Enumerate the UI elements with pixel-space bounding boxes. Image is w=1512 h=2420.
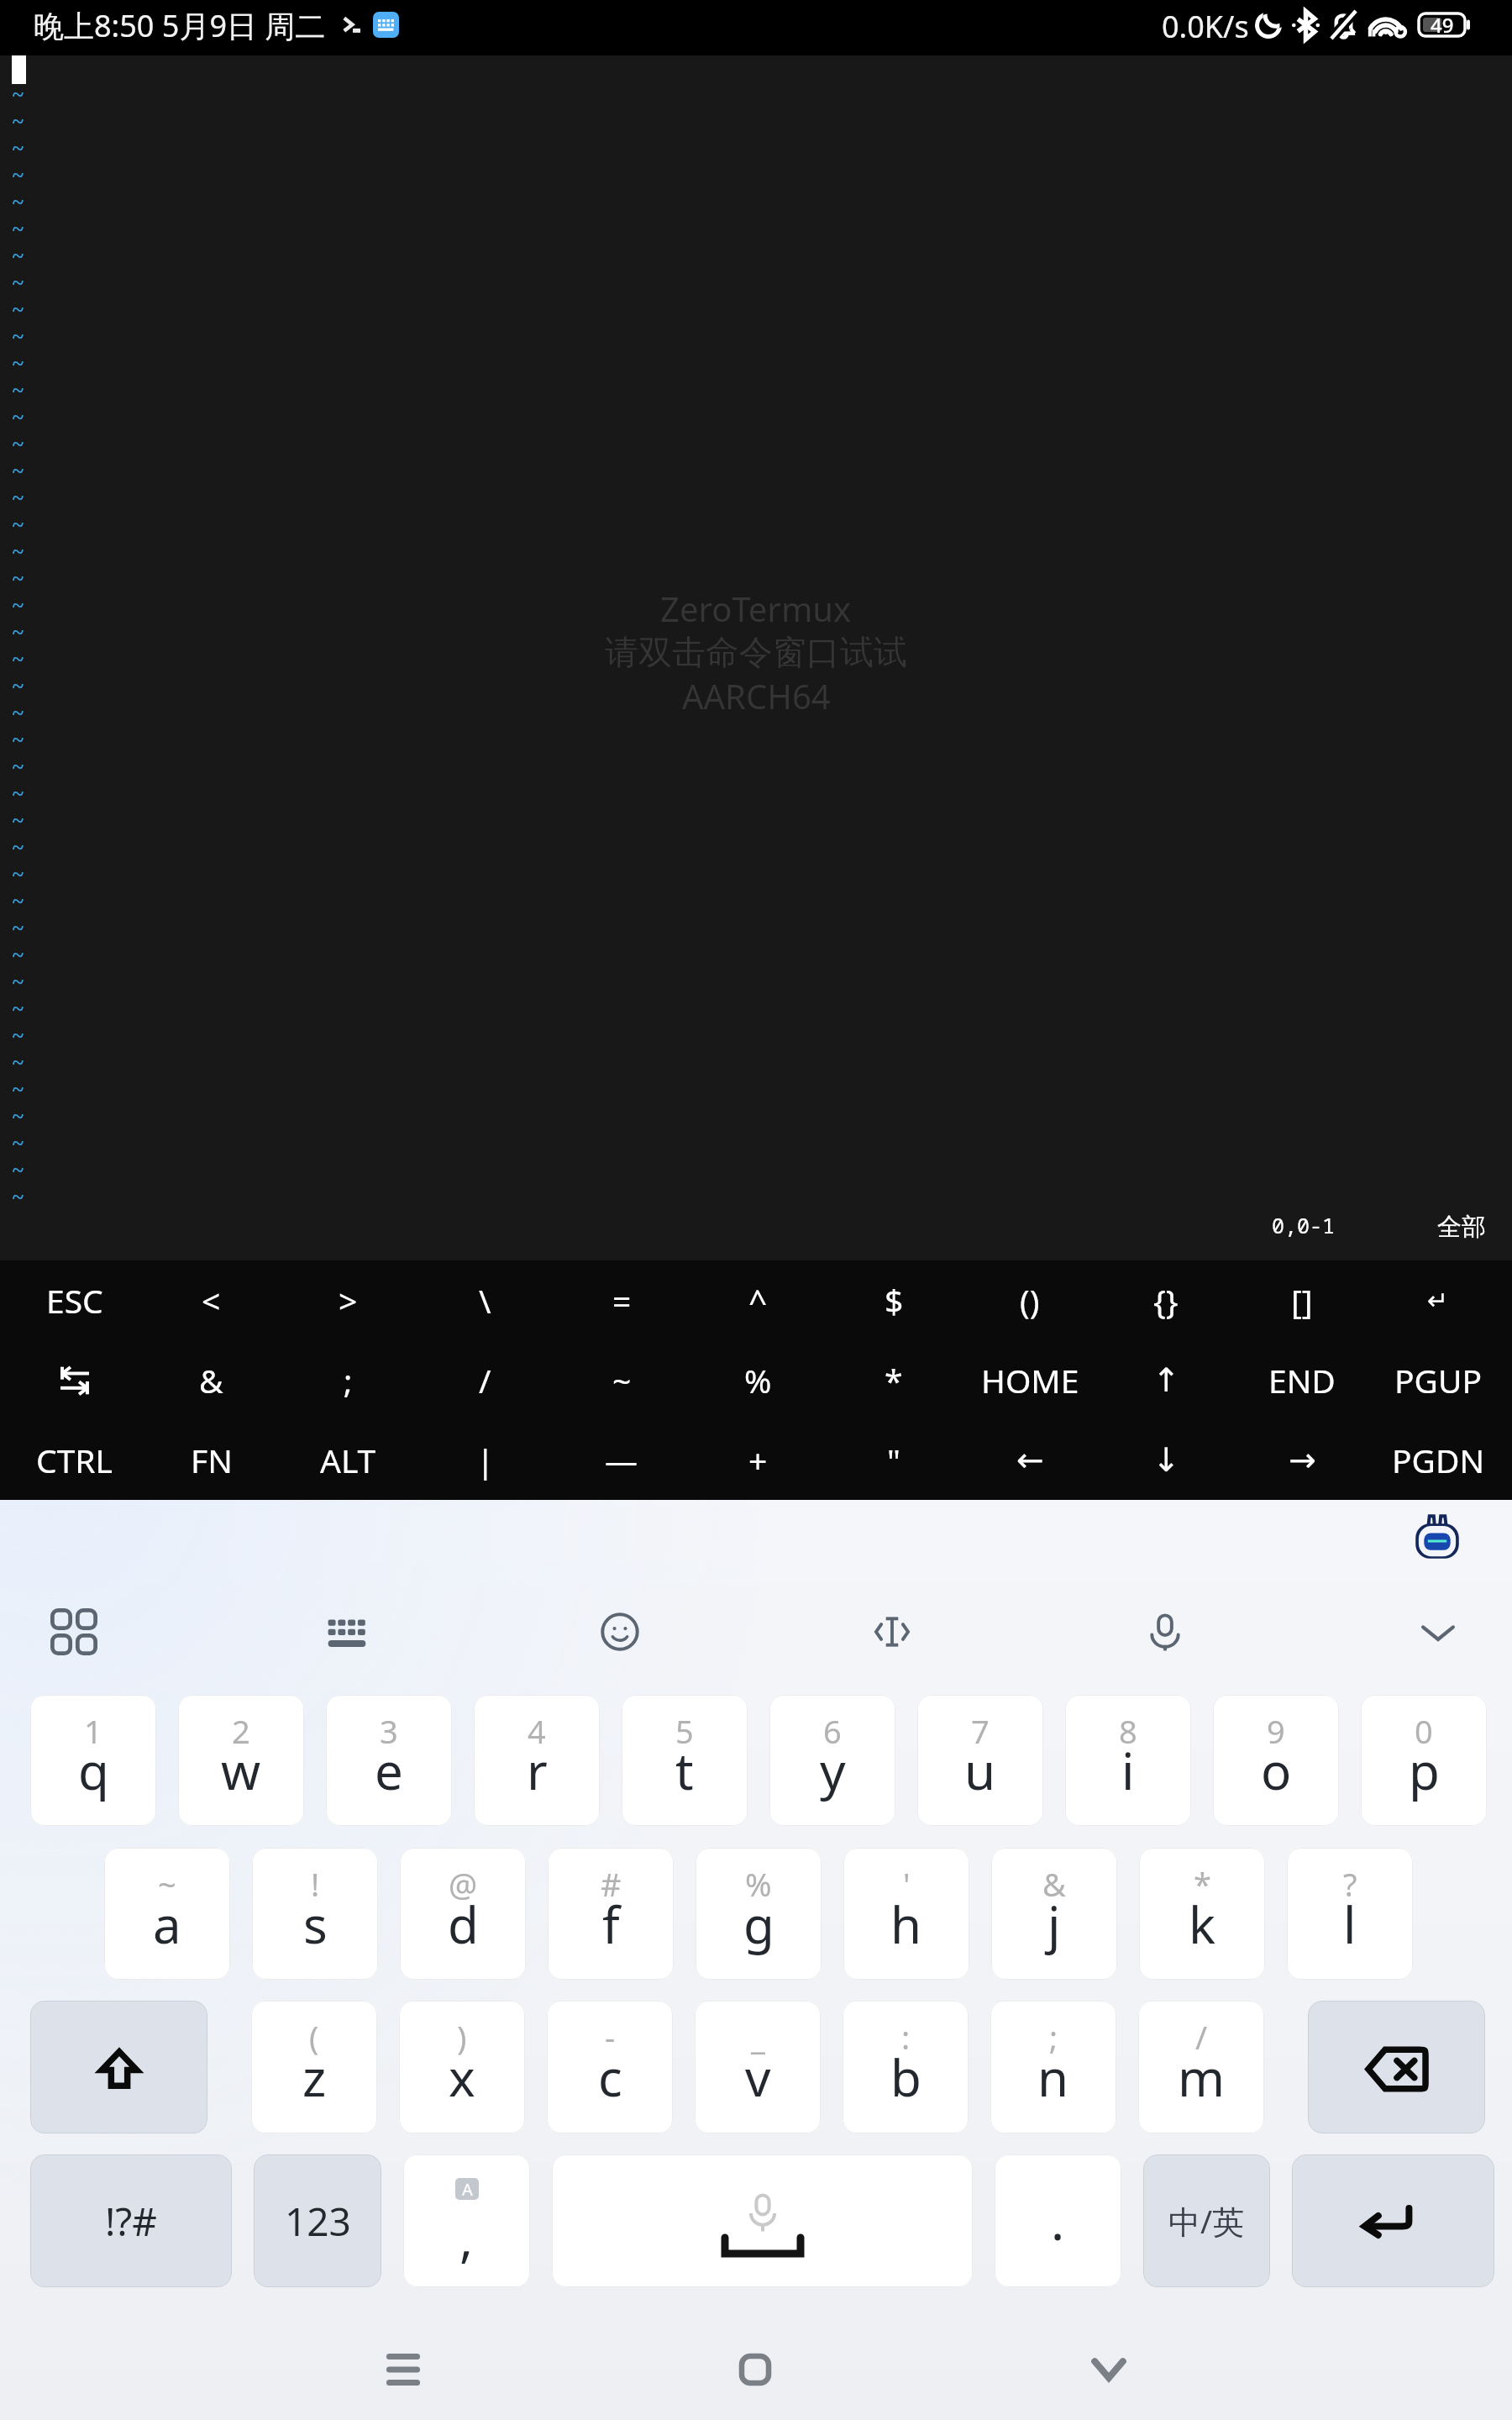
button[interactable]: ↑: [1098, 1340, 1234, 1420]
staticText: %: [744, 1358, 772, 1402]
staticText: ~: [11, 535, 25, 562]
button[interactable]: ↓: [1098, 1420, 1234, 1500]
button[interactable]: ESC: [6, 1260, 143, 1340]
button[interactable]: *: [826, 1340, 962, 1420]
button[interactable]: ': [843, 1848, 969, 1980]
button[interactable]: Space: [552, 2154, 973, 2287]
button[interactable]: 8: [1065, 1695, 1191, 1826]
button[interactable]: :: [843, 2001, 969, 2133]
button[interactable]: FN: [143, 1420, 280, 1500]
button[interactable]: +: [690, 1420, 826, 1500]
button[interactable]: (): [962, 1260, 1098, 1340]
button[interactable]: %: [696, 1848, 822, 1980]
button[interactable]: <: [143, 1260, 280, 1340]
staticText: ↑: [1152, 1361, 1180, 1399]
button[interactable]: &: [991, 1848, 1117, 1980]
button[interactable]: Keyboard layout: [320, 1607, 374, 1657]
button[interactable]: ^: [690, 1260, 826, 1340]
staticText: (: [309, 2015, 319, 2059]
button[interactable]: Cursor control: [865, 1607, 919, 1657]
button[interactable]: END: [1234, 1340, 1370, 1420]
staticText: ~: [11, 912, 25, 939]
button[interactable]: 9: [1213, 1695, 1339, 1826]
button[interactable]: ": [826, 1420, 962, 1500]
button[interactable]: $: [826, 1260, 962, 1340]
staticText: z: [302, 2043, 327, 2112]
staticText: i: [1121, 1736, 1135, 1805]
button[interactable]: ~: [104, 1848, 230, 1980]
button[interactable]: ?: [1287, 1848, 1413, 1980]
staticText: ~: [11, 885, 25, 912]
button[interactable]: ←: [962, 1420, 1098, 1500]
staticText: v: [745, 2043, 771, 2112]
button[interactable]: HOME: [962, 1340, 1098, 1420]
button[interactable]: 1: [30, 1695, 156, 1826]
button[interactable]: 2: [178, 1695, 304, 1826]
button[interactable]: Emoji: [593, 1607, 647, 1657]
button[interactable]: =: [554, 1260, 690, 1340]
button[interactable]: 5: [622, 1695, 748, 1826]
button[interactable]: #: [548, 1848, 674, 1980]
button[interactable]: A: [403, 2154, 530, 2287]
button[interactable]: *: [1139, 1848, 1265, 1980]
button[interactable]: &: [143, 1340, 280, 1420]
button[interactable]: 6: [769, 1695, 895, 1826]
button[interactable]: Terminal session: [0, 55, 1512, 1260]
staticText: ~: [11, 589, 25, 616]
staticText: ~: [11, 1181, 25, 1207]
button[interactable]: (: [251, 2001, 377, 2133]
button[interactable]: {}: [1098, 1260, 1234, 1340]
button[interactable]: ;: [280, 1340, 417, 1420]
button[interactable]: @: [400, 1848, 526, 1980]
button[interactable]: ALT: [280, 1420, 417, 1500]
button[interactable]: →: [1234, 1420, 1370, 1500]
button[interactable]: 4: [474, 1695, 600, 1826]
button[interactable]: %: [690, 1340, 826, 1420]
button[interactable]: ): [399, 2001, 525, 2133]
button[interactable]: ;: [990, 2001, 1116, 2133]
button[interactable]: ~: [554, 1340, 690, 1420]
button[interactable]: !: [252, 1848, 378, 1980]
button[interactable]: CTRL: [6, 1420, 143, 1500]
button[interactable]: ↵: [1370, 1260, 1506, 1340]
staticText: ~: [158, 1862, 176, 1906]
button[interactable]: Shift: [30, 2001, 207, 2133]
button[interactable]: Enter: [1292, 2154, 1494, 2287]
button[interactable]: !?#: [30, 2154, 232, 2287]
button[interactable]: PGUP: [1370, 1340, 1506, 1420]
button[interactable]: Home: [688, 2317, 822, 2420]
button[interactable]: Backspace: [1308, 2001, 1485, 2133]
button[interactable]: .: [995, 2154, 1121, 2287]
staticText: 123: [285, 2195, 351, 2248]
button[interactable]: 中/英: [1143, 2154, 1270, 2287]
button[interactable]: 7: [917, 1695, 1043, 1826]
button[interactable]: —: [554, 1420, 690, 1500]
button[interactable]: >: [280, 1260, 417, 1340]
button[interactable]: Menu: [336, 2317, 470, 2420]
staticText: 0: [1415, 1709, 1433, 1753]
button[interactable]: Voice input: [1138, 1607, 1192, 1657]
button[interactable]: Hide keyboard: [1411, 1607, 1465, 1657]
staticText: .: [1051, 2186, 1065, 2255]
button[interactable]: Hide keyboard: [1042, 2317, 1176, 2420]
button[interactable]: /: [417, 1340, 554, 1420]
button[interactable]: []: [1234, 1260, 1370, 1340]
staticText: ~: [11, 481, 25, 508]
button[interactable]: _: [695, 2001, 821, 2133]
button[interactable]: Apps: [47, 1607, 101, 1657]
staticText: PGUP: [1394, 1358, 1483, 1402]
staticText: ~: [11, 643, 25, 670]
button[interactable]: -: [547, 2001, 673, 2133]
button[interactable]: 123: [254, 2154, 381, 2287]
button[interactable]: [6, 1340, 143, 1420]
staticText: ~: [11, 1046, 25, 1073]
button[interactable]: Input method: [1414, 1513, 1461, 1560]
button[interactable]: \: [417, 1260, 554, 1340]
staticText: *: [885, 1358, 903, 1402]
button[interactable]: /: [1138, 2001, 1264, 2133]
button[interactable]: 0: [1361, 1695, 1487, 1826]
staticText: ~: [11, 213, 25, 239]
button[interactable]: |: [417, 1420, 554, 1500]
button[interactable]: 3: [326, 1695, 452, 1826]
button[interactable]: PGDN: [1370, 1420, 1506, 1500]
